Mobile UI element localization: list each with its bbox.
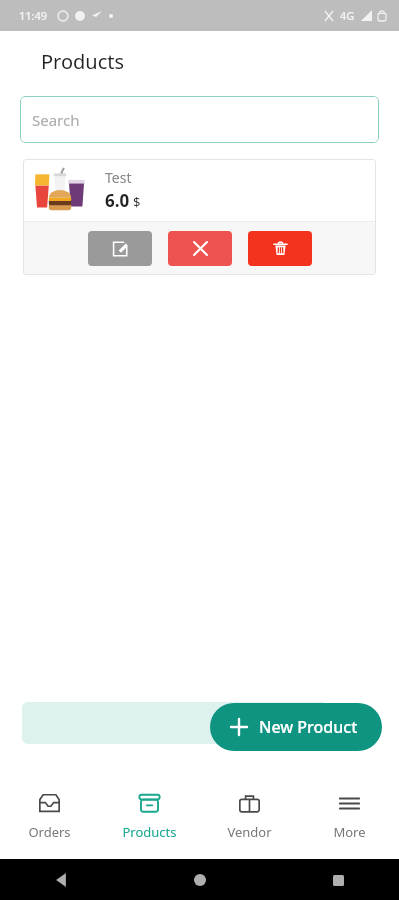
staticText: 4G bbox=[340, 8, 355, 23]
button[interactable]: Orders bbox=[0, 776, 99, 859]
staticText: More bbox=[333, 823, 366, 841]
button[interactable]: Back bbox=[52, 871, 70, 889]
button[interactable]: Search bbox=[20, 96, 379, 143]
button[interactable]: Cancel bbox=[168, 231, 232, 266]
button[interactable]: New Product bbox=[210, 703, 382, 751]
button[interactable]: Delete bbox=[248, 231, 312, 266]
staticText: New Product bbox=[259, 716, 358, 738]
button[interactable]: Edit bbox=[88, 231, 152, 266]
staticText: Products bbox=[122, 823, 177, 841]
staticText: Orders bbox=[28, 823, 71, 841]
button[interactable]: Recents bbox=[329, 871, 347, 889]
staticText: Test bbox=[105, 168, 132, 187]
button[interactable]: Test bbox=[23, 159, 376, 275]
staticText: Products bbox=[41, 48, 125, 75]
staticText: $ bbox=[133, 193, 141, 211]
button[interactable]: Products bbox=[99, 776, 199, 859]
staticText: 11:49 bbox=[19, 8, 48, 23]
staticText: Vendor bbox=[227, 823, 272, 841]
button[interactable]: Vendor bbox=[199, 776, 299, 859]
button[interactable]: More bbox=[299, 776, 399, 859]
staticText: Search bbox=[32, 110, 80, 130]
button[interactable]: Home bbox=[191, 871, 209, 889]
staticText: 6.0 bbox=[105, 189, 130, 212]
